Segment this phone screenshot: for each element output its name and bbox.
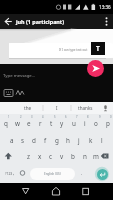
staticText: o xyxy=(94,119,98,128)
staticText: e xyxy=(27,119,31,128)
button[interactable]: t xyxy=(46,117,56,130)
button[interactable] xyxy=(48,183,64,200)
staticText: . xyxy=(81,170,83,177)
button[interactable] xyxy=(1,149,16,163)
staticText: v xyxy=(60,152,64,161)
staticText: q xyxy=(4,119,8,128)
button[interactable]: ?123 xyxy=(1,166,16,180)
staticText: a xyxy=(10,136,14,145)
staticText: 5 xyxy=(54,115,56,119)
button[interactable]: j xyxy=(74,133,84,147)
staticText: r xyxy=(39,119,42,128)
button[interactable]: . xyxy=(77,166,87,180)
button[interactable]: c xyxy=(46,149,56,163)
staticText: If I can type text out xyxy=(59,48,88,52)
button[interactable]: g xyxy=(52,133,62,147)
staticText: b xyxy=(71,152,75,161)
button[interactable]: e xyxy=(24,117,34,130)
button[interactable]: q xyxy=(1,117,11,130)
staticText: I xyxy=(56,105,58,111)
button[interactable]: thanks xyxy=(71,102,99,114)
button[interactable]: b xyxy=(68,149,78,163)
button[interactable]: , xyxy=(9,166,19,180)
button[interactable]: the xyxy=(14,102,42,114)
staticText: juh (1 participant) xyxy=(16,18,65,25)
staticText: w xyxy=(15,119,20,128)
staticText: 2 xyxy=(20,115,22,119)
button[interactable] xyxy=(87,60,104,77)
button[interactable]: k xyxy=(86,133,96,147)
staticText: k xyxy=(89,136,93,145)
staticText: 7 xyxy=(76,115,78,119)
staticText: f xyxy=(44,136,47,145)
button[interactable]: d xyxy=(29,133,39,147)
button[interactable]: y xyxy=(57,117,67,130)
staticText: T xyxy=(96,44,100,53)
staticText: 6 xyxy=(65,115,67,119)
staticText: u xyxy=(72,119,76,128)
button[interactable]: p xyxy=(103,117,113,130)
button[interactable]: f xyxy=(40,133,50,147)
staticText: 1 xyxy=(8,115,10,119)
staticText: z xyxy=(27,152,30,161)
button[interactable] xyxy=(97,169,108,180)
button[interactable]: English (US) xyxy=(30,168,75,180)
staticText: y xyxy=(60,119,64,128)
button[interactable]: w xyxy=(12,117,22,130)
staticText: thanks xyxy=(78,105,93,111)
staticText: i xyxy=(84,119,86,128)
button[interactable]: x xyxy=(35,149,45,163)
button[interactable] xyxy=(18,183,34,200)
staticText: , xyxy=(13,170,15,177)
staticText: English (US) xyxy=(44,172,61,176)
button[interactable]: I xyxy=(43,102,71,114)
staticText: the xyxy=(24,105,32,111)
staticText: 9 xyxy=(99,115,101,119)
staticText: m xyxy=(93,152,99,161)
staticText: n xyxy=(83,152,87,161)
button[interactable]: z xyxy=(23,149,33,163)
staticText: 13:36 xyxy=(99,4,111,10)
button[interactable]: u xyxy=(69,117,79,130)
staticText: g xyxy=(55,136,59,145)
button[interactable]: a xyxy=(7,133,17,147)
staticText: 3 xyxy=(31,115,33,119)
button[interactable] xyxy=(97,149,112,163)
staticText: x xyxy=(38,152,42,161)
staticText: 4 xyxy=(42,115,44,119)
staticText: d xyxy=(32,136,36,145)
button[interactable]: n xyxy=(80,149,90,163)
button[interactable]: r xyxy=(35,117,45,130)
staticText: h xyxy=(66,136,70,145)
staticText: j xyxy=(78,136,80,145)
staticText: 8 xyxy=(87,115,89,119)
staticText: p xyxy=(106,119,110,128)
button[interactable]: o xyxy=(91,117,101,130)
staticText: ?123 xyxy=(5,171,13,176)
staticText: l xyxy=(101,136,103,145)
button[interactable]: v xyxy=(57,149,67,163)
staticText: 0 xyxy=(110,115,112,119)
button[interactable]: m xyxy=(91,149,101,163)
button[interactable]: Type message... xyxy=(3,70,63,80)
staticText: Type message... xyxy=(3,72,36,78)
button[interactable]: h xyxy=(63,133,73,147)
button[interactable] xyxy=(77,183,93,200)
button[interactable]: s xyxy=(18,133,28,147)
button[interactable]: l xyxy=(97,133,107,147)
button[interactable]: If I can type text out xyxy=(40,44,88,56)
staticText: s xyxy=(21,136,25,145)
staticText: t xyxy=(50,119,53,128)
staticText: c xyxy=(49,152,53,161)
button[interactable] xyxy=(0,14,15,29)
button[interactable]: i xyxy=(80,117,90,130)
